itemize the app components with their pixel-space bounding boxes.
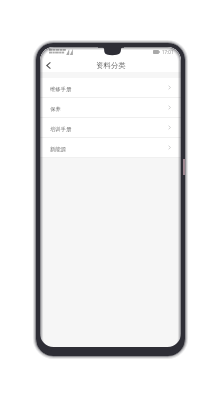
staticText: 培训手册 (50, 126, 72, 133)
button[interactable]: Back (40, 56, 56, 72)
staticText: 新能源 (50, 146, 66, 153)
button[interactable]: 保养 (40, 98, 181, 117)
button[interactable]: 维修手册 (40, 78, 181, 97)
button[interactable]: 培训手册 (40, 118, 181, 137)
button[interactable]: 新能源 (40, 138, 181, 157)
staticText: 维修手册 (50, 86, 72, 93)
staticText: 17:01 (162, 49, 174, 55)
staticText: 保养 (50, 106, 61, 113)
staticText: 资料分类 (96, 61, 126, 70)
